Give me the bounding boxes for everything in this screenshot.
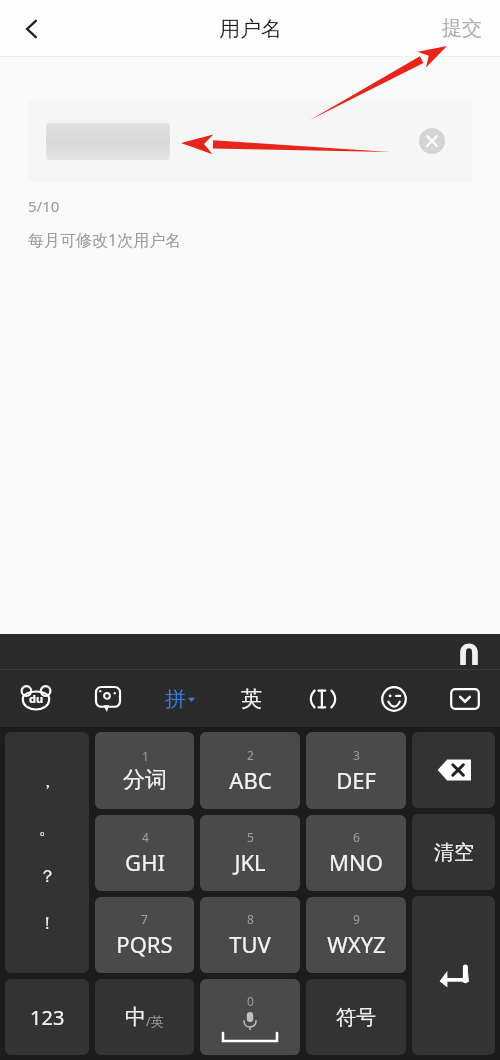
button[interactable]: 2 <box>200 732 300 809</box>
button[interactable]: ， <box>5 732 89 973</box>
button[interactable]: Pinyin <box>144 670 216 727</box>
button[interactable]: Clear <box>28 100 472 182</box>
staticText: 5/10 <box>28 196 60 216</box>
button[interactable]: 123 <box>5 979 89 1055</box>
staticText: 分词 <box>123 766 167 794</box>
button[interactable]: Logo <box>456 639 482 665</box>
button[interactable]: 3 <box>306 732 406 809</box>
staticText: 英 <box>241 686 262 712</box>
staticText: ， <box>39 771 56 792</box>
staticText: MNO <box>329 847 383 877</box>
staticText: 8 <box>247 911 254 927</box>
staticText: 123 <box>30 1004 65 1031</box>
staticText: PQRS <box>116 929 173 959</box>
button[interactable]: Hide keyboard <box>429 670 500 727</box>
button[interactable]: Backspace <box>412 732 495 808</box>
button[interactable]: 8 <box>200 897 300 973</box>
staticText: 5 <box>247 829 254 845</box>
staticText: 2 <box>247 747 254 763</box>
staticText: GHI <box>125 847 165 877</box>
button[interactable]: 5 <box>200 815 300 891</box>
staticText: 清空 <box>434 840 474 865</box>
button[interactable]: Baidu input <box>0 670 72 727</box>
staticText: 拼 <box>165 686 186 712</box>
staticText: ！ <box>39 913 56 934</box>
staticText: DEF <box>336 765 376 795</box>
staticText: 用户名 <box>219 16 282 42</box>
button[interactable]: Back <box>8 5 56 53</box>
staticText: ABC <box>229 765 272 795</box>
button[interactable]: 7 <box>95 897 194 973</box>
staticText: TUV <box>229 929 271 959</box>
button[interactable]: Enter <box>412 896 495 1055</box>
staticText: 9 <box>353 911 360 927</box>
button[interactable]: Move cursor <box>287 670 358 727</box>
button[interactable]: Voice card <box>72 670 144 727</box>
staticText: /英 <box>146 1012 164 1030</box>
staticText: 6 <box>353 829 360 845</box>
staticText: ？ <box>39 866 56 887</box>
staticText: 1 <box>142 748 149 764</box>
staticText: 4 <box>142 829 149 845</box>
button[interactable]: 4 <box>95 815 194 891</box>
button[interactable]: 符号 <box>306 979 406 1055</box>
staticText: 符号 <box>336 1005 376 1030</box>
button[interactable]: 0 <box>200 979 300 1055</box>
staticText: 3 <box>353 747 360 763</box>
staticText: 。 <box>39 818 56 839</box>
button[interactable]: Emoji <box>358 670 429 727</box>
staticText: 每月可修改1次用户名 <box>28 229 182 251</box>
staticText: 0 <box>247 993 254 1009</box>
staticText: 中 <box>125 1004 146 1030</box>
button[interactable]: 1 <box>95 732 194 809</box>
button[interactable]: 中 <box>95 979 194 1055</box>
staticText: WXYZ <box>327 929 386 959</box>
staticText: 7 <box>141 911 148 927</box>
button[interactable]: 清空 <box>412 814 495 890</box>
button[interactable]: English <box>216 670 287 727</box>
staticText: JKL <box>234 847 266 877</box>
button[interactable]: 提交 <box>424 4 500 53</box>
button[interactable]: 6 <box>306 815 406 891</box>
button[interactable]: Clear <box>414 123 450 159</box>
staticText: 提交 <box>442 16 482 41</box>
staticText: du <box>29 691 44 706</box>
button[interactable]: 9 <box>306 897 406 973</box>
